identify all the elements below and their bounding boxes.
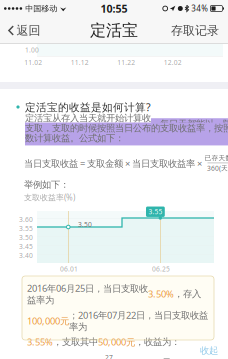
staticText: 返回	[16, 23, 40, 38]
staticText: 3.50%	[148, 288, 174, 300]
staticText: 3.55%	[27, 336, 53, 348]
staticText: 支取，支取的时候按照当日公布的支取收益率，按照所存天	[25, 122, 228, 145]
staticText: 3.55	[148, 207, 162, 216]
staticText: 收起	[200, 345, 218, 356]
staticText: 3.40	[19, 251, 33, 260]
staticText: 支取收益率(%)	[24, 192, 75, 203]
staticText: 12.02	[164, 58, 182, 67]
staticText: 3.45	[19, 242, 33, 251]
staticText: 10:55	[100, 1, 127, 16]
staticText: 06.01	[60, 264, 78, 273]
staticText: 1.00	[25, 45, 39, 54]
staticText: 360(天)	[207, 164, 228, 173]
staticText: 定活宝的收益是如何计算?	[25, 100, 151, 114]
staticText: 。公式如下：	[70, 132, 124, 144]
staticText: 已存天数	[204, 154, 228, 162]
button[interactable]: 返回	[2, 17, 46, 44]
staticText: ；2016年07月22日，当日支取收益率为	[69, 309, 208, 333]
staticText: 存取记录	[171, 23, 219, 38]
staticText: 定活宝从存入当天就开始计算收益	[25, 112, 151, 135]
staticText: 27	[105, 353, 113, 359]
staticText: 06.25	[152, 264, 170, 273]
staticText: 11.12	[71, 58, 89, 67]
staticText: 举例如下：	[24, 179, 69, 190]
button[interactable]: 存取记录	[164, 17, 226, 44]
staticText: ，收益为：	[135, 336, 180, 348]
staticText: 元	[159, 357, 171, 359]
staticText: 中国移动	[25, 4, 57, 13]
staticText: 34%	[191, 3, 208, 14]
staticText: 数计算收益	[25, 132, 70, 144]
staticText: 3.55	[19, 224, 33, 233]
staticText: ，每日天都能以，随时转	[151, 118, 228, 130]
staticText: 11.22	[117, 58, 135, 67]
staticText: 100,000元	[27, 315, 69, 327]
staticText: ，存入	[174, 288, 201, 300]
staticText: 3.60	[19, 215, 33, 224]
staticText: 3.50	[19, 233, 33, 242]
staticText: 2016年06月25日，当日支取收益率为	[27, 282, 148, 306]
staticText: 3.50	[78, 220, 92, 229]
staticText: 11.02	[24, 58, 42, 67]
staticText: 当日支取收益 = 支取金额 × 当日支取收益率 ×	[24, 157, 202, 169]
staticText: 定活宝	[90, 21, 138, 40]
button[interactable]: 收起	[196, 343, 222, 358]
staticText: ，支取其中	[53, 336, 98, 348]
staticText: 50,000元	[98, 336, 135, 348]
